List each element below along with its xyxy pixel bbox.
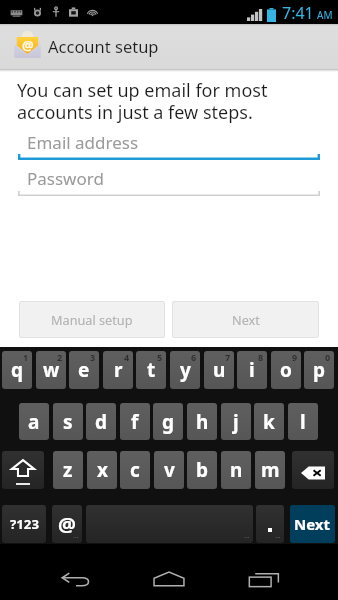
button[interactable]: e <box>69 351 99 389</box>
staticText: @ <box>58 511 76 538</box>
staticText: 5 <box>157 351 163 363</box>
staticText: g <box>162 409 175 435</box>
button[interactable]: Back <box>37 544 113 600</box>
staticText: 1 <box>23 351 29 363</box>
button[interactable]: q <box>2 351 32 389</box>
staticText: t <box>147 357 156 383</box>
button[interactable]: l <box>288 403 318 440</box>
staticText: j <box>233 409 239 435</box>
staticText: q <box>11 357 24 383</box>
button[interactable]: a <box>19 403 49 440</box>
button[interactable]: o <box>271 351 301 389</box>
button[interactable]: n <box>221 451 251 489</box>
staticText: AM <box>317 8 333 22</box>
staticText: 6 <box>191 351 197 363</box>
staticText: m <box>261 457 280 483</box>
staticText: v <box>164 457 175 483</box>
button[interactable]: Next <box>172 301 319 338</box>
button[interactable]: Recent apps <box>226 544 302 600</box>
button[interactable]: v <box>154 451 184 489</box>
staticText: ... <box>244 531 250 541</box>
button[interactable]: k <box>254 403 284 440</box>
button[interactable]: w <box>36 351 66 389</box>
button[interactable]: Space <box>86 505 253 543</box>
staticText: r <box>114 357 123 383</box>
staticText: x <box>97 457 108 483</box>
staticText: 0 <box>325 351 331 363</box>
button[interactable]: f <box>120 403 150 440</box>
button[interactable]: c <box>120 451 150 489</box>
staticText: z <box>63 457 73 483</box>
button[interactable]: Shift <box>2 451 44 489</box>
staticText: u <box>213 357 226 383</box>
staticText: 3 <box>90 351 96 363</box>
staticText: ... <box>73 531 79 541</box>
staticText: Next <box>294 514 331 534</box>
staticText: e <box>78 357 90 383</box>
button[interactable]: y <box>170 351 200 389</box>
staticText: n <box>230 457 243 483</box>
staticText: 7:41 <box>282 2 314 24</box>
staticText: Account setup <box>48 35 159 57</box>
button[interactable]: t <box>136 351 166 389</box>
button[interactable]: b <box>187 451 217 489</box>
staticText: 2 <box>57 351 63 363</box>
button[interactable]: Home <box>131 544 207 600</box>
staticText: i <box>249 357 255 383</box>
staticText: Next <box>232 311 260 328</box>
staticText: h <box>196 409 209 435</box>
staticText: d <box>95 409 108 435</box>
button[interactable]: ?123 <box>2 505 46 543</box>
button[interactable]: x <box>87 451 117 489</box>
staticText: o <box>280 357 292 383</box>
staticText: s <box>63 409 73 435</box>
button[interactable]: Period <box>256 505 284 543</box>
staticText: ?123 <box>10 515 39 533</box>
staticText: f <box>131 409 139 435</box>
staticText: c <box>130 457 140 483</box>
button[interactable]: j <box>221 403 251 440</box>
button[interactable]: u <box>204 351 234 389</box>
button[interactable]: d <box>86 403 116 440</box>
staticText: Email address <box>27 131 139 154</box>
staticText: p <box>313 357 326 383</box>
button[interactable]: Manual setup <box>19 301 165 338</box>
button[interactable]: p <box>304 351 334 389</box>
button[interactable]: Backspace <box>292 451 334 489</box>
staticText: k <box>263 409 275 435</box>
button[interactable]: Next <box>290 505 335 543</box>
staticText: @ <box>22 36 34 54</box>
button[interactable]: r <box>103 351 133 389</box>
staticText: 8 <box>258 351 264 363</box>
staticText: a <box>28 409 40 435</box>
staticText: l <box>300 409 306 435</box>
button[interactable]: @ <box>0 24 338 69</box>
button[interactable]: s <box>53 403 83 440</box>
staticText: w <box>43 357 60 383</box>
staticText: ... <box>275 531 281 541</box>
staticText: 9 <box>292 351 298 363</box>
staticText: 4 <box>124 351 130 363</box>
button[interactable]: @ <box>52 505 82 543</box>
staticText: b <box>196 457 209 483</box>
staticText: Manual setup <box>51 311 133 328</box>
button[interactable]: i <box>237 351 267 389</box>
button[interactable]: Password <box>18 163 320 196</box>
staticText: You can set up email for most accounts i… <box>17 78 302 125</box>
button[interactable]: h <box>187 403 217 440</box>
staticText: y <box>180 357 191 383</box>
button[interactable]: m <box>255 451 285 489</box>
button[interactable]: g <box>153 403 183 440</box>
button[interactable]: z <box>53 451 83 489</box>
staticText: 7 <box>225 351 231 363</box>
button[interactable]: Email address <box>18 127 320 160</box>
staticText: Password <box>27 167 104 190</box>
